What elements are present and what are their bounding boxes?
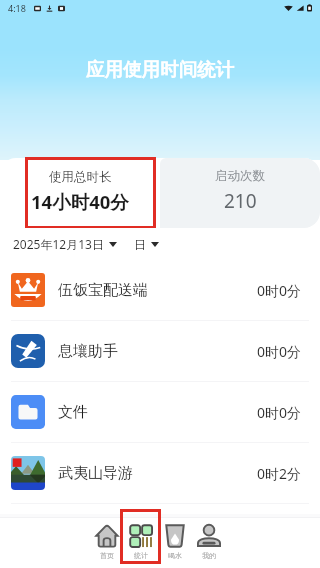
staticText: 息壤助手 <box>58 342 118 361</box>
staticText: 我的 <box>202 551 216 560</box>
staticText: 0时0分 <box>257 281 302 300</box>
staticText: 伍饭宝配送端 <box>58 281 148 300</box>
button[interactable]: 使用总时长 <box>0 158 160 224</box>
button[interactable]: 文件 <box>0 382 320 442</box>
staticText: 0时0分 <box>257 403 302 422</box>
staticText: 文件 <box>58 403 88 422</box>
staticText: 启动次数 <box>215 168 265 184</box>
staticText: 0时0分 <box>257 342 302 361</box>
staticText: 14小时40分 <box>31 189 129 214</box>
button[interactable]: 伍饭宝配送端 <box>0 260 320 320</box>
staticText: 4:18 <box>8 2 26 14</box>
staticText: 日 <box>134 237 146 252</box>
button[interactable]: 息壤助手 <box>0 321 320 381</box>
button[interactable]: 日 <box>134 237 159 252</box>
button[interactable]: 武夷山导游 <box>0 443 320 503</box>
staticText: 武夷山导游 <box>58 464 133 483</box>
staticText: 应用使用时间统计 <box>86 58 234 81</box>
staticText: 使用总时长 <box>49 169 112 185</box>
staticText: 首页 <box>100 551 114 560</box>
button[interactable]: 统计 <box>124 514 158 568</box>
staticText: 统计 <box>134 551 148 560</box>
staticText: 2025年12月13日 <box>13 236 104 252</box>
button[interactable]: 2025年12月13日 <box>13 236 117 252</box>
button[interactable]: 启动次数 <box>160 158 320 228</box>
button[interactable]: 首页 <box>90 514 124 568</box>
staticText: 210 <box>224 188 257 214</box>
button[interactable]: 喝水 <box>158 514 192 568</box>
staticText: 喝水 <box>168 551 182 560</box>
staticText: 0时2分 <box>257 464 302 483</box>
button[interactable]: 我的 <box>192 514 226 568</box>
